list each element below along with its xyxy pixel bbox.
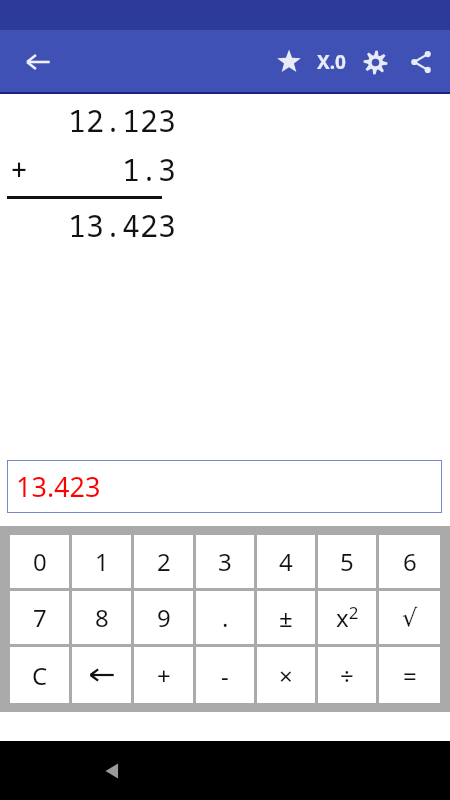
button[interactable]: -	[196, 647, 254, 703]
staticText: ±	[279, 601, 293, 634]
staticText: -	[221, 659, 229, 692]
button[interactable]: √	[379, 591, 440, 644]
button[interactable]: Favorite	[267, 40, 311, 84]
button[interactable]: Back	[14, 38, 62, 86]
button[interactable]: 6	[379, 535, 440, 588]
button[interactable]: x2	[318, 591, 376, 644]
staticText: 7	[33, 601, 47, 634]
staticText: ÷	[340, 659, 354, 692]
staticText: 2	[157, 545, 171, 578]
staticText: .	[222, 601, 229, 634]
staticText: =	[403, 659, 417, 692]
button[interactable]: 7	[10, 591, 69, 644]
staticText: +	[157, 659, 171, 692]
staticText: 0	[33, 545, 47, 578]
button[interactable]: 0	[10, 535, 69, 588]
button[interactable]: 2	[134, 535, 193, 588]
button[interactable]: .	[196, 591, 254, 644]
button[interactable]: C	[10, 647, 69, 703]
staticText: √	[402, 604, 418, 632]
button[interactable]: 3	[196, 535, 254, 588]
button[interactable]: X.0	[311, 40, 352, 84]
staticText: 13.423	[16, 468, 101, 505]
staticText: +	[10, 149, 28, 190]
staticText: x2	[336, 601, 359, 634]
button[interactable]: Settings	[352, 39, 398, 85]
staticText: 1.3	[122, 149, 176, 190]
button[interactable]: 1	[72, 535, 131, 588]
staticText: 4	[279, 545, 293, 578]
staticText: 6	[403, 545, 417, 578]
staticText: ×	[279, 659, 293, 692]
staticText: C	[32, 659, 48, 692]
button[interactable]: ±	[257, 591, 315, 644]
button[interactable]: +	[134, 647, 193, 703]
staticText: X.0	[317, 49, 346, 75]
button[interactable]	[72, 647, 131, 703]
staticText: 8	[95, 601, 109, 634]
button[interactable]: 8	[72, 591, 131, 644]
button[interactable]: 4	[257, 535, 315, 588]
button[interactable]: ×	[257, 647, 315, 703]
staticText: 13.423	[68, 205, 176, 246]
staticText: 9	[157, 601, 171, 634]
button[interactable]: Share	[398, 39, 444, 85]
button[interactable]: =	[379, 647, 440, 703]
staticText: 12.123	[68, 100, 176, 141]
staticText: 3	[218, 545, 232, 578]
button[interactable]: ÷	[318, 647, 376, 703]
staticText: 5	[340, 545, 354, 578]
staticText: 1	[95, 545, 109, 578]
button[interactable]: Back	[91, 749, 135, 793]
button[interactable]: 5	[318, 535, 376, 588]
button[interactable]: 13.423	[7, 460, 442, 513]
button[interactable]: 9	[134, 591, 193, 644]
